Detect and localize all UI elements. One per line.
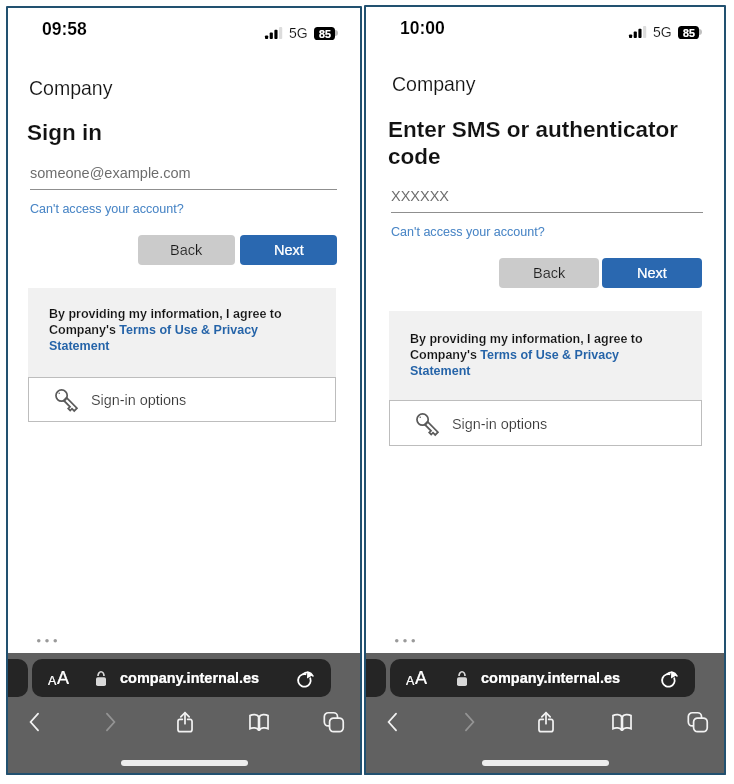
button[interactable]: Code field	[391, 182, 703, 213]
staticText: A	[406, 674, 415, 688]
staticText: A	[415, 668, 428, 688]
button[interactable]: By providing my information, I agree to …	[410, 332, 650, 377]
button[interactable]: Reload	[660, 669, 679, 688]
button[interactable]: Bookmarks	[605, 705, 639, 739]
staticText: A	[48, 674, 57, 688]
button[interactable]: Reload	[296, 669, 315, 688]
button[interactable]: Share	[529, 705, 563, 739]
staticText: A	[57, 668, 70, 688]
button[interactable]: Back	[376, 705, 410, 739]
staticText: someone@example.com	[30, 165, 191, 181]
staticText: Next	[637, 265, 667, 281]
staticText: Sign-in options	[452, 416, 548, 432]
staticText: company.internal.es	[481, 670, 621, 686]
button[interactable]: Forward	[452, 705, 486, 739]
button[interactable]: Sign-in options	[389, 400, 702, 446]
button[interactable]: Back	[138, 235, 235, 265]
staticText: Enter SMS or authenticator code	[388, 117, 705, 169]
staticText: Sign in	[27, 120, 339, 145]
staticText: Sign-in options	[91, 392, 187, 408]
button[interactable]: company.internal.es	[390, 659, 695, 697]
button[interactable]: Text size	[48, 668, 70, 688]
button[interactable]: Share	[168, 705, 202, 739]
button[interactable]: company.internal.es	[32, 659, 331, 697]
staticText: 10:00	[400, 18, 445, 38]
staticText: Back	[170, 242, 203, 258]
staticText: Company	[29, 77, 113, 99]
staticText: 85	[319, 28, 331, 40]
button[interactable]: By providing my information, I agree to …	[49, 307, 289, 352]
button[interactable]: Bookmarks	[242, 705, 276, 739]
button[interactable]: Next	[602, 258, 702, 288]
staticText: XXXXXX	[391, 188, 450, 204]
staticText: 09:58	[42, 19, 87, 39]
button[interactable]: Back	[18, 705, 52, 739]
button[interactable]: Next	[240, 235, 337, 265]
staticText: company.internal.es	[120, 670, 260, 686]
button[interactable]: Forward	[93, 705, 127, 739]
staticText: 5G	[289, 25, 308, 41]
staticText: Next	[274, 242, 304, 258]
button[interactable]: Back	[499, 258, 599, 288]
button[interactable]: Email field	[30, 159, 337, 190]
staticText: Company	[392, 73, 476, 95]
staticText: 5G	[653, 24, 672, 40]
button[interactable]: Text size	[406, 668, 428, 688]
staticText: 85	[683, 27, 695, 39]
button[interactable]: Tabs	[317, 705, 351, 739]
button[interactable]: Sign-in options	[28, 377, 336, 422]
button[interactable]: Can't access your account?	[391, 225, 545, 239]
button[interactable]: Tabs	[681, 705, 715, 739]
button[interactable]: Can't access your account?	[30, 202, 184, 216]
staticText: Back	[533, 265, 566, 281]
